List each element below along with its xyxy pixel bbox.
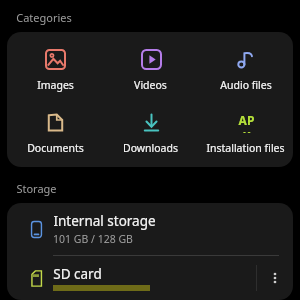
staticText: Images [37,78,74,92]
button[interactable]: Videos [103,42,198,96]
staticText: Videos [134,78,167,92]
button[interactable]: Downloads [103,105,198,159]
staticText: SD card [53,265,102,283]
button[interactable]: Documents [7,105,103,159]
button[interactable]: Audio files [198,42,293,96]
button[interactable]: SD card [7,256,293,300]
staticText: Downloads [123,141,178,155]
staticText: Documents [27,141,84,155]
staticText: Categories [16,10,72,25]
staticText: 101 GB / 128 GB [53,232,133,246]
staticText: Internal storage [53,212,156,230]
staticText: Audio files [220,78,272,92]
button[interactable]: Internal storage [7,203,293,255]
button[interactable]: Images [7,42,103,96]
staticText: Storage [16,181,57,196]
staticText: APK [236,112,257,133]
button[interactable]: More options [257,265,293,291]
button[interactable]: APK [198,105,293,159]
staticText: Installation files [206,141,285,155]
